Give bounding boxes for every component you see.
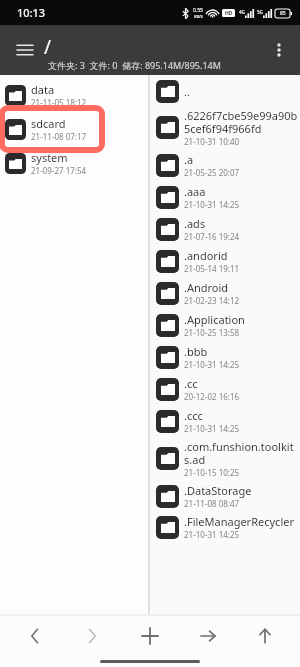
button[interactable]: .ads — [150, 213, 300, 245]
button[interactable]: Back — [12, 615, 58, 657]
staticText: 21-11-05 18:12 — [31, 97, 87, 108]
staticText: .ads — [184, 216, 206, 231]
staticText: 21-10-31 14:25 — [184, 529, 240, 540]
staticText: 0.55 — [193, 7, 203, 14]
staticText: 21-02-23 14:12 — [184, 295, 240, 306]
button[interactable]: .cc — [150, 373, 300, 405]
staticText: .bbb — [184, 344, 208, 359]
button[interactable]: .FileManagerRecycler — [150, 512, 300, 542]
staticText: 21-10-25 13:58 — [184, 327, 240, 338]
staticText: system — [31, 150, 68, 165]
staticText: .cc — [184, 376, 198, 391]
button[interactable]: Forward — [69, 615, 115, 657]
staticText: .Android — [184, 280, 229, 295]
staticText: .ccc — [184, 408, 203, 423]
button[interactable]: Up — [242, 615, 288, 657]
staticText: 21-10-31 10:40 — [184, 136, 240, 147]
staticText: 21-07-16 19:24 — [184, 231, 240, 242]
staticText: 10:13 — [17, 5, 46, 20]
staticText: 20-12-02 16:16 — [184, 391, 240, 402]
staticText: / — [44, 34, 52, 60]
button[interactable]: system — [0, 146, 148, 180]
button[interactable]: .bbb — [150, 341, 300, 373]
staticText: .6226f7cbe59e99a90b5cef6f94f966fd — [184, 108, 298, 136]
staticText: .FileManagerRecycler — [184, 514, 294, 529]
staticText: 21-10-31 14:25 — [184, 423, 240, 434]
staticText: .aaa — [184, 184, 206, 199]
staticText: 21-11-08 07:17 — [31, 131, 87, 142]
staticText: .DataStorage — [184, 483, 252, 498]
button[interactable]: .com.funshion.toolkits.ad — [150, 437, 300, 480]
button[interactable]: More options — [264, 35, 294, 65]
button[interactable]: .aaa — [150, 181, 300, 213]
button[interactable]: .Application — [150, 309, 300, 341]
staticText: 21-10-15 10:25 — [184, 467, 240, 478]
staticText: 21-10-31 14:25 — [184, 359, 240, 370]
button[interactable]: .andorid — [150, 245, 300, 277]
staticText: .a — [184, 152, 194, 167]
staticText: data — [31, 82, 55, 97]
staticText: 21-10-31 14:25 — [184, 199, 240, 210]
button[interactable]: .Android — [150, 277, 300, 309]
staticText: sdcard — [31, 116, 66, 131]
staticText: .andorid — [184, 248, 228, 263]
button[interactable]: .DataStorage — [150, 480, 300, 512]
staticText: 21-09-27 17:54 — [31, 165, 87, 176]
button[interactable]: .6226f7cbe59e99a90b5cef6f94f966fd — [150, 106, 300, 149]
staticText: 85 — [280, 10, 286, 17]
button[interactable]: sdcard — [0, 112, 148, 146]
staticText: 4G — [239, 9, 245, 15]
button[interactable]: .a — [150, 149, 300, 181]
button[interactable]: Paste — [185, 615, 231, 657]
staticText: .Application — [184, 312, 245, 327]
button[interactable]: .ccc — [150, 405, 300, 437]
button[interactable]: New — [127, 615, 173, 657]
staticText: KB/S — [194, 14, 203, 19]
staticText: 21-11-08 08:47 — [184, 498, 240, 509]
staticText: 5G — [257, 9, 263, 15]
button[interactable]: Menu — [10, 35, 40, 65]
button[interactable]: data — [0, 78, 148, 112]
staticText: .. — [184, 84, 190, 99]
button[interactable]: .. — [150, 77, 300, 106]
staticText: 21-05-14 19:11 — [184, 263, 240, 274]
staticText: 文件夹: 3 文件: 0 储存: 895.14M/895.14M — [48, 59, 221, 71]
staticText: 21-05-25 20:07 — [184, 167, 240, 178]
staticText: .com.funshion.toolkits.ad — [184, 439, 298, 467]
staticText: HD — [225, 10, 233, 17]
